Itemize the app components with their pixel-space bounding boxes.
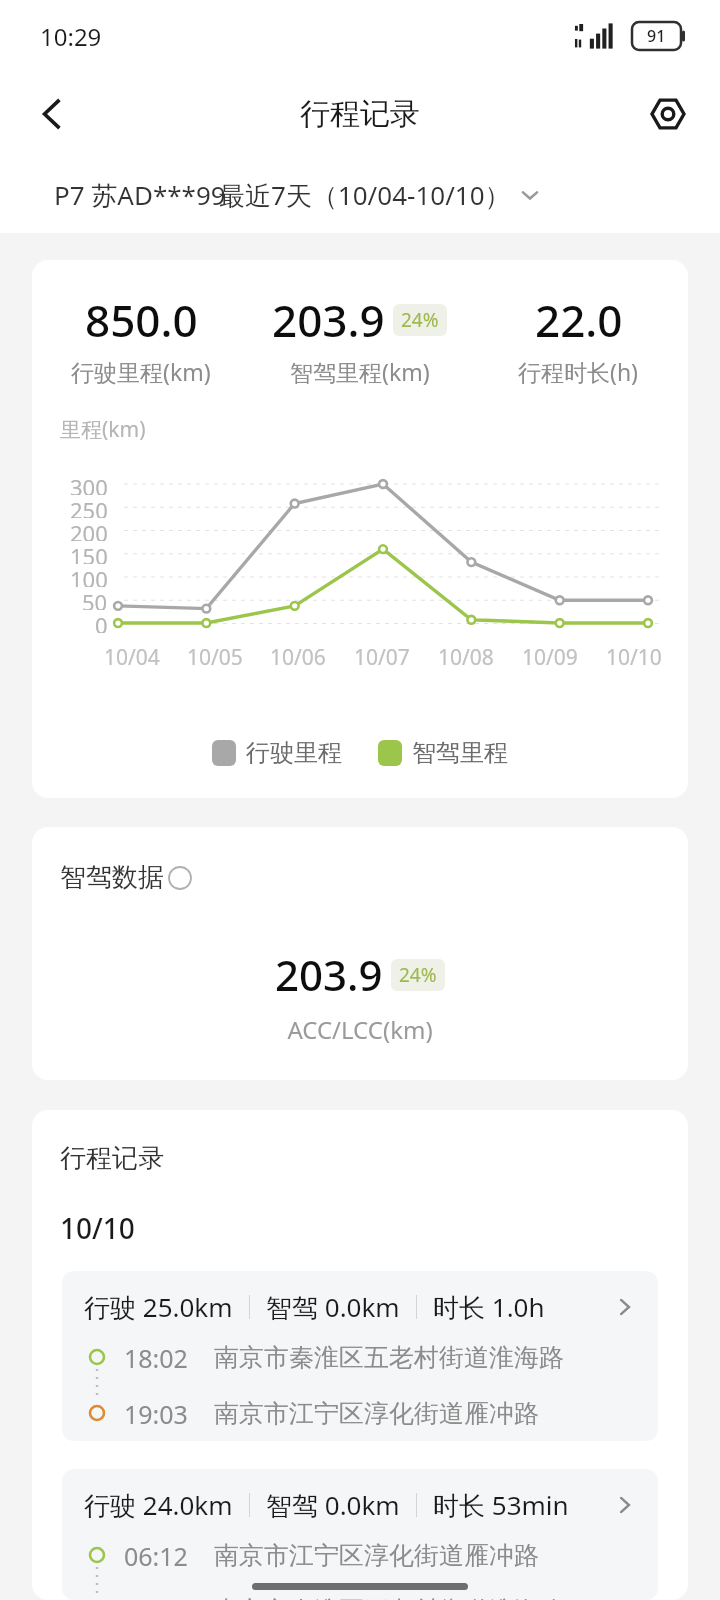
- staticText: 行驶里程: [246, 738, 342, 768]
- button[interactable]: 智驾数据: [60, 861, 192, 894]
- staticText: 10/10: [60, 1209, 135, 1247]
- staticText: 南京市江宁区淳化街道雁冲路: [214, 1398, 539, 1429]
- staticText: 里程(km): [60, 415, 146, 444]
- staticText: 智驾 0.0km: [266, 1289, 400, 1325]
- staticText: 24%: [399, 962, 437, 988]
- staticText: 200: [70, 518, 108, 541]
- staticText: 22.0: [535, 290, 623, 350]
- staticText: 0: [95, 610, 108, 633]
- staticText: 南京市秦淮区五老村街道淮海路: [214, 1342, 564, 1373]
- staticText: 10/09: [522, 643, 578, 672]
- staticText: 智驾里程: [412, 738, 508, 768]
- staticText: 行程记录: [300, 95, 420, 133]
- button[interactable]: 行驶 24.0km: [62, 1469, 658, 1600]
- staticText: 50: [82, 587, 108, 610]
- staticText: 150: [70, 541, 108, 564]
- staticText: 10/05: [187, 643, 243, 672]
- staticText: 203.9: [275, 946, 383, 1003]
- staticText: 南京市江宁区淳化街道雁冲路: [214, 1540, 539, 1571]
- button[interactable]: 行驶里程: [212, 738, 342, 768]
- staticText: 19:03: [124, 1397, 188, 1429]
- staticText: 10/06: [270, 643, 326, 672]
- staticText: 850.0: [85, 290, 198, 350]
- button[interactable]: 最近7天（10/04-10/10）: [219, 177, 541, 213]
- button[interactable]: 行驶 25.0km: [62, 1271, 658, 1441]
- staticText: 06:12: [124, 1539, 188, 1571]
- staticText: 南京市秦淮区五老村街道淮海路: [214, 1595, 564, 1600]
- staticText: 10:29: [40, 20, 102, 53]
- staticText: 24%: [401, 307, 439, 333]
- button[interactable]: P7 苏AD***99: [54, 177, 226, 213]
- staticText: 10/04: [104, 643, 160, 672]
- staticText: 最近7天（10/04-10/10）: [219, 177, 511, 213]
- staticText: 智驾 0.0km: [266, 1487, 400, 1523]
- staticText: 智驾数据: [60, 861, 164, 894]
- staticText: 行驶里程(km): [71, 356, 211, 387]
- staticText: 时长 1.0h: [433, 1289, 545, 1325]
- button[interactable]: Settings: [636, 82, 700, 146]
- staticText: 91: [647, 25, 666, 47]
- staticText: 10/08: [438, 643, 494, 672]
- button[interactable]: 智驾里程: [378, 738, 508, 768]
- staticText: 203.9: [272, 290, 385, 350]
- staticText: 行驶 25.0km: [84, 1289, 233, 1325]
- staticText: 时长 53min: [433, 1487, 569, 1523]
- staticText: 18:02: [124, 1341, 188, 1373]
- other: Help: [168, 866, 192, 890]
- staticText: 行程记录: [60, 1142, 164, 1175]
- staticText: 300: [70, 472, 108, 495]
- button[interactable]: Back: [20, 82, 84, 146]
- staticText: 10/07: [354, 643, 410, 672]
- staticText: 行驶 24.0km: [84, 1487, 233, 1523]
- staticText: 250: [70, 495, 108, 518]
- staticText: 智驾里程(km): [290, 356, 430, 387]
- staticText: 10/10: [606, 643, 662, 672]
- staticText: ACC/LCC(km): [32, 1013, 688, 1046]
- staticText: 100: [70, 564, 108, 587]
- staticText: 行程时长(h): [518, 356, 639, 387]
